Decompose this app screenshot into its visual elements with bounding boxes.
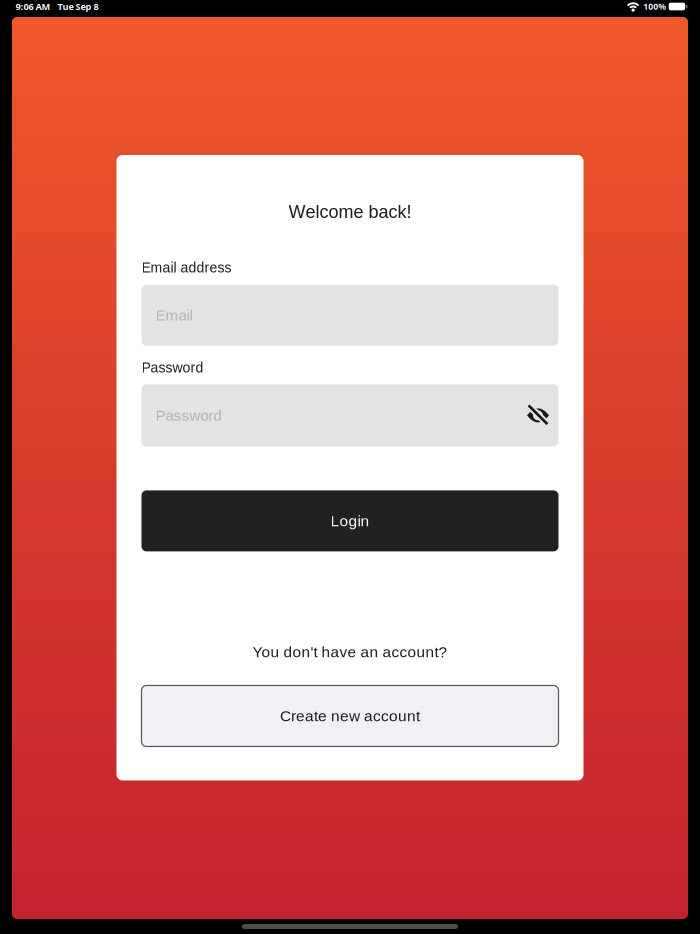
- button[interactable]: Login: [141, 490, 558, 551]
- staticText: Create new account: [280, 707, 420, 725]
- staticText: Email address: [141, 260, 231, 275]
- staticText: You don't have an account?: [252, 643, 447, 660]
- staticText: Password: [141, 360, 203, 375]
- button[interactable]: Create new account: [141, 685, 558, 746]
- staticText: Welcome back!: [288, 202, 411, 222]
- staticText: Login: [330, 512, 369, 529]
- staticText: Tue Sep 8: [57, 0, 98, 13]
- button[interactable]: Show password: [518, 395, 558, 435]
- staticText: Password: [155, 407, 221, 424]
- staticText: 9:06 AM: [15, 0, 50, 13]
- staticText: Email: [155, 307, 192, 324]
- staticText: 100%: [643, 1, 666, 12]
